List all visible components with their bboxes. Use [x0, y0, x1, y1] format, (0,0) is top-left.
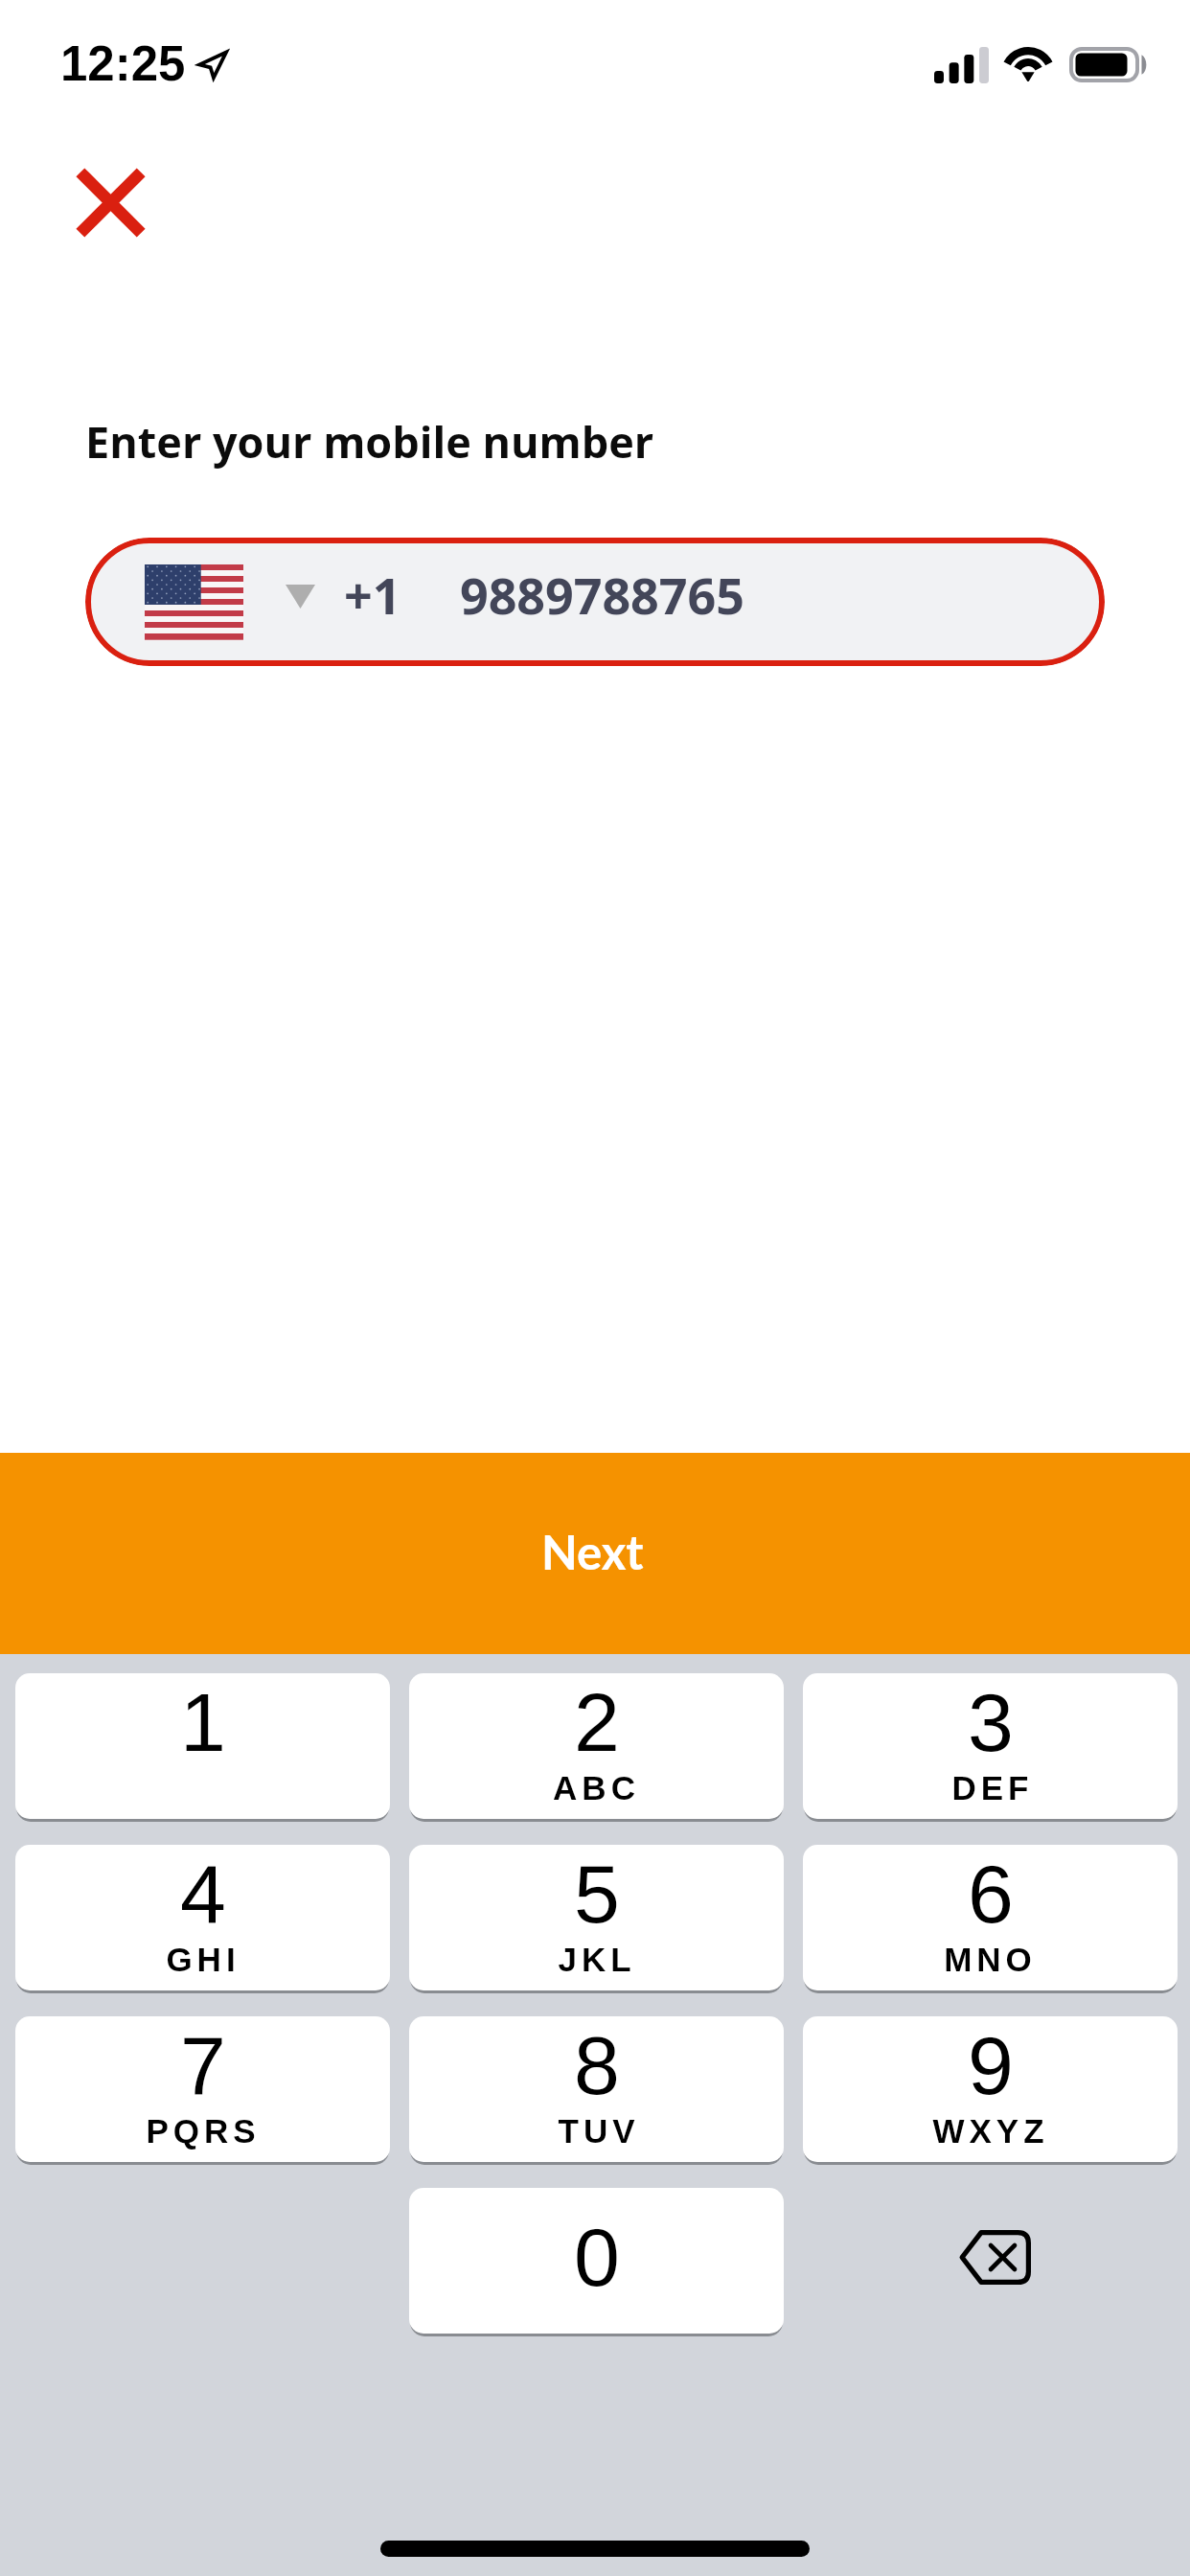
button[interactable]: 9	[803, 2016, 1178, 2162]
button[interactable]: 3	[803, 1673, 1178, 1819]
button[interactable]: 7	[15, 2016, 390, 2162]
button[interactable]: 4	[15, 1845, 390, 1990]
staticText: 7	[180, 2019, 226, 2111]
button[interactable]: 2	[409, 1673, 784, 1819]
staticText: Next	[541, 1524, 644, 1580]
staticText: 4	[180, 1848, 226, 1940]
staticText: PQRS	[146, 2112, 261, 2150]
staticText: 0	[574, 2211, 620, 2303]
button[interactable]: Next	[0, 1453, 1190, 2576]
button[interactable]: 1	[15, 1673, 390, 1819]
staticText: TUV	[556, 2112, 637, 2150]
button[interactable]: +1	[85, 538, 1105, 666]
staticText: ABC	[553, 1769, 640, 1806]
button[interactable]: 8	[409, 2016, 784, 2162]
button[interactable]: 0	[409, 2188, 784, 2334]
staticText: 2	[574, 1676, 620, 1768]
button[interactable]: Close	[46, 138, 174, 266]
staticText: 6	[968, 1848, 1014, 1940]
button[interactable]: 5	[409, 1845, 784, 1990]
staticText: 3	[968, 1676, 1014, 1768]
staticText: DEF	[950, 1769, 1031, 1806]
button[interactable]: 6	[803, 1845, 1178, 1990]
staticText: WXYZ	[932, 2112, 1049, 2150]
staticText: 12:25	[60, 36, 186, 91]
staticText: MNO	[944, 1941, 1037, 1978]
staticText: JKL	[558, 1941, 636, 1978]
staticText: 9	[968, 2019, 1014, 2111]
staticText: 8	[574, 2019, 620, 2111]
staticText: GHI	[166, 1941, 240, 1978]
button[interactable]: Backspace	[803, 2188, 1178, 2334]
staticText: 5	[574, 1848, 620, 1940]
staticText: Enter your mobile number	[85, 412, 654, 471]
staticText: +1	[344, 561, 401, 629]
staticText: 9889788765	[460, 561, 744, 629]
staticText: 1	[180, 1676, 226, 1768]
